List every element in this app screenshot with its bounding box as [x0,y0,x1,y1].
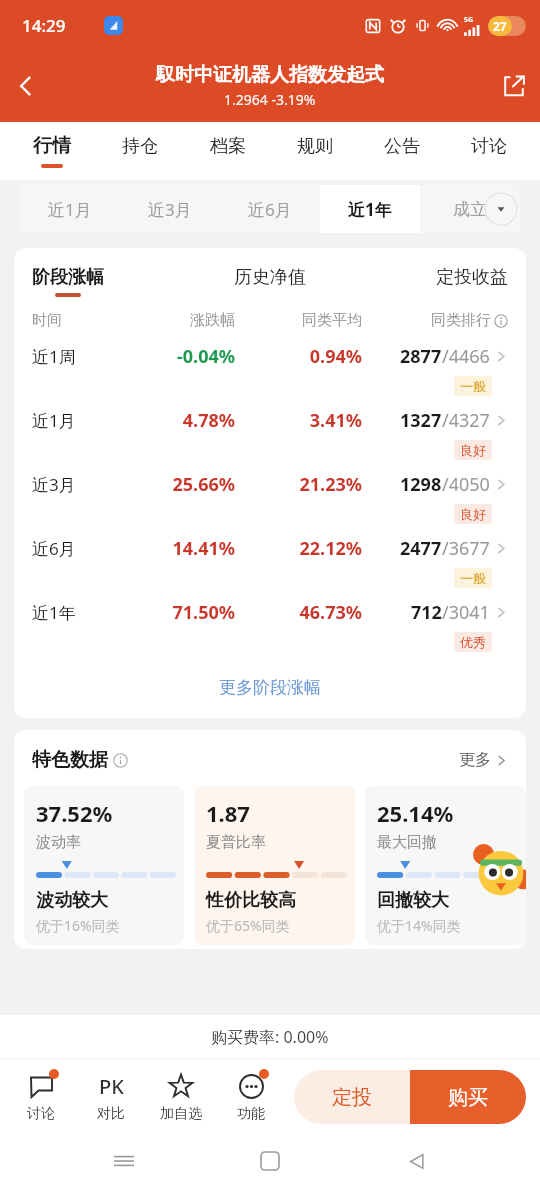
button[interactable]: 规则 [271,122,358,180]
button[interactable]: 定投收益 [349,266,508,297]
button[interactable]: 历史净值 [190,266,349,297]
staticText: 712 [411,600,442,625]
button[interactable]: 讨论 [445,122,532,180]
staticText: /4050 [442,472,490,497]
button[interactable]: 成立 [420,185,520,233]
button[interactable]: 定投 [294,1070,410,1124]
button[interactable]: Back [394,1138,440,1184]
button[interactable]: 近6月 [220,185,320,233]
button[interactable]: PK [76,1059,146,1135]
staticText: 14:29 [22,14,66,37]
button[interactable]: 1.87 [194,786,355,945]
staticText: 波动率 [36,833,81,852]
staticText: 37.52% [36,798,113,828]
staticText: -0.04% [127,344,235,369]
staticText: /4327 [442,408,490,433]
staticText: /4466 [442,344,490,369]
button[interactable]: Home [247,1138,293,1184]
staticText: 优于65%同类 [206,916,290,935]
staticText: 14.41% [127,536,235,561]
button[interactable]: 持仓 [96,122,184,180]
button[interactable]: 讨论 [6,1059,76,1135]
staticText: 一般 [460,378,486,394]
staticText: 近1月 [48,198,92,221]
staticText: 历史净值 [234,266,306,289]
staticText: 46.73% [235,600,362,625]
staticText: 功能 [237,1105,265,1123]
staticText: 加自选 [160,1105,202,1123]
button[interactable]: 近1周 [14,336,526,400]
button[interactable]: 近1年 [320,185,420,233]
staticText: 涨跌幅 [127,311,235,330]
staticText: 25.14% [377,798,454,828]
staticText: 近3月 [32,473,127,496]
staticText: 近1年 [32,601,127,624]
staticText: 同类平均 [235,311,362,330]
button[interactable]: 购买 [410,1070,526,1124]
staticText: 近1月 [32,409,127,432]
button[interactable]: 档案 [184,122,271,180]
staticText: 定投 [332,1085,372,1110]
button[interactable]: 近3月 [14,464,526,528]
button[interactable]: Recents [101,1138,147,1184]
staticText: /3677 [442,536,490,561]
staticText: 近3月 [148,198,192,221]
staticText: 性价比较高 [206,889,296,912]
staticText: /3041 [442,600,490,625]
staticText: 71.50% [127,600,235,625]
staticText: 对比 [97,1105,125,1123]
staticText: 0.94% [235,344,362,369]
button[interactable]: Back [0,60,52,112]
staticText: 2877 [400,344,442,369]
staticText: 2477 [400,536,442,561]
staticText: 1298 [400,472,442,497]
staticText: 25.66% [127,472,235,497]
staticText: 1.87 [206,798,250,828]
staticText: 5G [464,15,474,25]
staticText: 1327 [400,408,442,433]
staticText: 近1年 [348,198,392,221]
button[interactable]: 加自选 [146,1059,216,1135]
staticText: 一般 [460,570,486,586]
staticText: 4.78% [127,408,235,433]
staticText: 定投收益 [436,266,508,289]
button[interactable]: More periods [484,192,518,226]
button[interactable]: Share [488,60,540,112]
button[interactable]: 更多 [455,746,512,774]
button[interactable]: 更多阶段涨幅 [14,656,526,718]
staticText: 馭时中证机器人指数发起式 [156,63,384,87]
staticText: 夏普比率 [206,833,266,852]
button[interactable]: 37.52% [24,786,184,945]
button[interactable]: 近6月 [14,528,526,592]
button[interactable]: 近3月 [120,185,220,233]
staticText: 时间 [32,311,127,330]
staticText: 更多 [459,750,491,770]
staticText: 购买 [448,1085,488,1110]
staticText: 回撤较大 [377,889,449,912]
staticText: 良好 [460,506,486,522]
staticText: 公告 [384,135,420,158]
staticText: 规则 [297,135,333,158]
button[interactable]: 公告 [358,122,445,180]
staticText: PK [99,1073,124,1100]
button[interactable]: 行情 [8,122,96,180]
button[interactable]: 25.14% [365,786,526,945]
staticText: 持仓 [122,135,158,158]
staticText: 档案 [210,135,246,158]
button[interactable]: 功能 [216,1059,286,1135]
staticText: 1.2964 -3.19% [224,90,316,109]
staticText: 讨论 [471,135,507,158]
staticText: 成立 [453,199,487,220]
button[interactable]: 近1月 [20,185,120,233]
button[interactable]: 近1年 [14,592,526,656]
staticText: 讨论 [27,1105,55,1123]
staticText: 更多阶段涨幅 [219,677,321,698]
staticText: 阶段涨幅 [32,266,104,289]
button[interactable]: 近1月 [14,400,526,464]
staticText: 特色数据 [32,748,108,772]
staticText: 行情 [33,134,71,158]
staticText: 优于16%同类 [36,916,120,935]
staticText: 3.41% [235,408,362,433]
button[interactable]: 阶段涨幅 [32,266,190,297]
staticText: 近6月 [248,198,292,221]
